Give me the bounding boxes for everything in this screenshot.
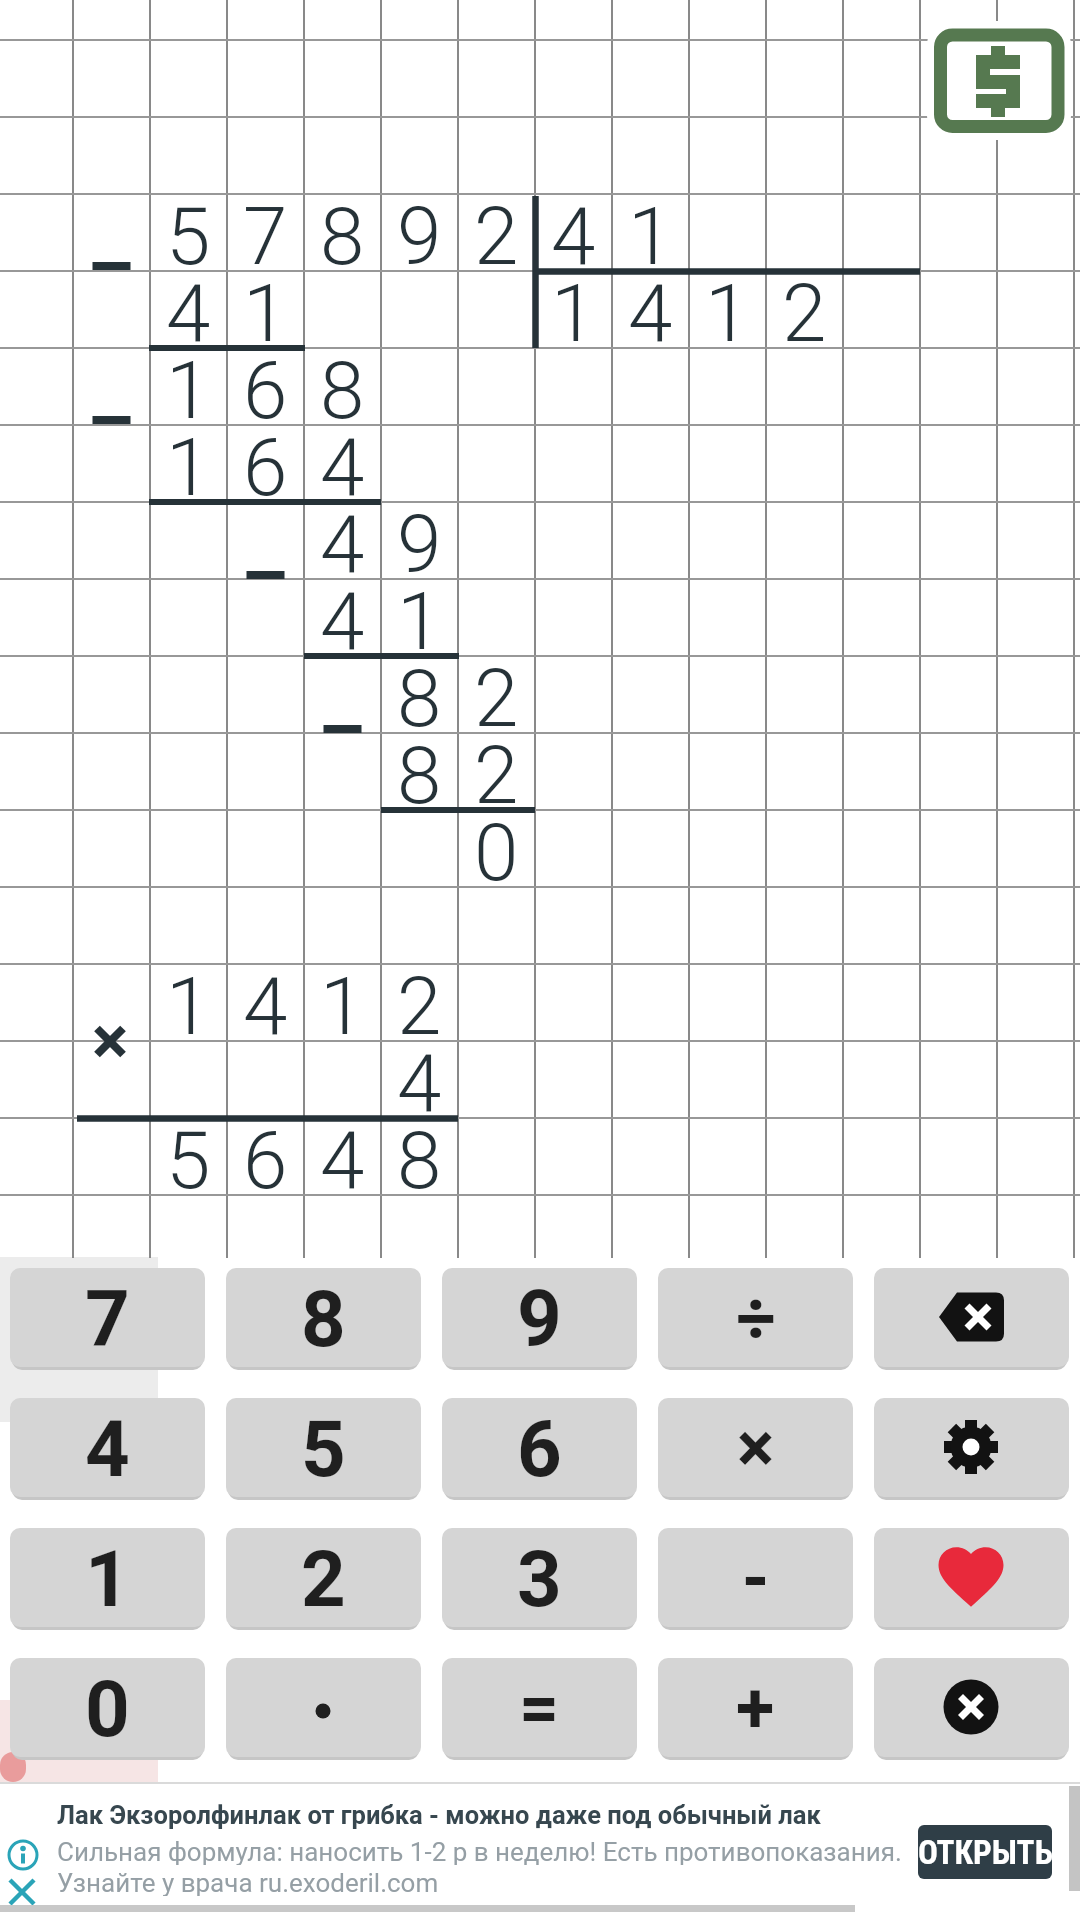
staticText: 6 [243, 344, 288, 438]
staticText: 4 [397, 1037, 442, 1131]
staticText: 2 [474, 729, 519, 823]
staticText: 1 [166, 960, 211, 1054]
staticText: × [737, 1407, 775, 1489]
staticText: Сильная формула: наносить 1-2 р в неделю… [57, 1837, 902, 1865]
staticText: Узнайте у врача ru.exoderil.com [57, 1868, 439, 1896]
button[interactable] [874, 1398, 1069, 1497]
staticText: 9 [397, 498, 442, 592]
button[interactable]: 5 [226, 1398, 421, 1497]
staticText: = [519, 1667, 560, 1749]
staticText: 4 [85, 1404, 130, 1495]
staticText: 4 [320, 421, 365, 515]
staticText: 1 [243, 267, 288, 361]
staticText: 4 [320, 1114, 365, 1208]
button[interactable]: 4 [10, 1398, 205, 1497]
button[interactable]: × [658, 1398, 853, 1497]
button[interactable] [927, 21, 1071, 140]
button[interactable] [874, 1528, 1069, 1627]
staticText: 8 [301, 1274, 346, 1365]
button[interactable]: = [442, 1658, 637, 1757]
staticText: 2 [782, 267, 827, 361]
staticText: 3 [517, 1534, 562, 1625]
staticText: 5 [301, 1404, 346, 1495]
staticText: 4 [551, 190, 596, 284]
staticText: 4 [320, 575, 365, 669]
staticText: 6 [243, 421, 288, 515]
button[interactable]: ОТКРЫТЬ [918, 1825, 1052, 1879]
staticText: 8 [397, 729, 442, 823]
staticText: 9 [397, 190, 442, 284]
staticText: 1 [551, 267, 596, 361]
staticText: 0 [85, 1664, 130, 1755]
button[interactable]: 8 [226, 1268, 421, 1367]
button[interactable]: 2 [226, 1528, 421, 1627]
staticText: 1 [397, 575, 442, 669]
staticText: 1 [705, 267, 750, 361]
staticText: 1 [628, 190, 673, 284]
staticText: 4 [166, 267, 211, 361]
staticText: Лак Экзоролфинлак от грибка - можно даже… [57, 1800, 821, 1830]
button[interactable]: 0 [10, 1658, 205, 1757]
staticText: 2 [301, 1534, 346, 1625]
staticText: 5 [166, 1114, 211, 1208]
staticText: 4 [628, 267, 673, 361]
staticText: 4 [243, 960, 288, 1054]
staticText: 0 [474, 806, 519, 900]
staticText: - [742, 1537, 770, 1619]
button[interactable]: 3 [442, 1528, 637, 1627]
button[interactable] [874, 1658, 1069, 1757]
staticText: 5 [166, 190, 211, 284]
button[interactable] [4, 1840, 42, 1902]
staticText: 7 [85, 1274, 130, 1365]
staticText: 2 [474, 190, 519, 284]
staticText: ÷ [736, 1277, 776, 1359]
staticText: 8 [397, 652, 442, 746]
button[interactable]: 1 [10, 1528, 205, 1627]
button[interactable]: - [658, 1528, 853, 1627]
button[interactable]: + [658, 1658, 853, 1757]
button[interactable]: ÷ [658, 1268, 853, 1367]
staticText: 8 [320, 190, 365, 284]
staticText: 8 [397, 1114, 442, 1208]
staticText: 8 [320, 344, 365, 438]
button[interactable]: 7 [10, 1268, 205, 1367]
staticText: 6 [517, 1404, 562, 1495]
button[interactable]: 9 [442, 1268, 637, 1367]
staticText: 1 [166, 344, 211, 438]
staticText: 9 [517, 1274, 562, 1365]
button[interactable] [874, 1268, 1069, 1367]
staticText: 1 [85, 1534, 130, 1625]
staticText: 6 [243, 1114, 288, 1208]
staticText: 2 [474, 652, 519, 746]
staticText: 1 [166, 421, 211, 515]
staticText: 4 [320, 498, 365, 592]
button[interactable]: 6 [442, 1398, 637, 1497]
staticText: + [736, 1667, 775, 1749]
button[interactable] [226, 1658, 421, 1757]
staticText: 7 [243, 190, 288, 284]
staticText: 2 [397, 960, 442, 1054]
staticText: ОТКРЫТЬ [918, 1833, 1052, 1872]
staticText: 1 [320, 960, 365, 1054]
